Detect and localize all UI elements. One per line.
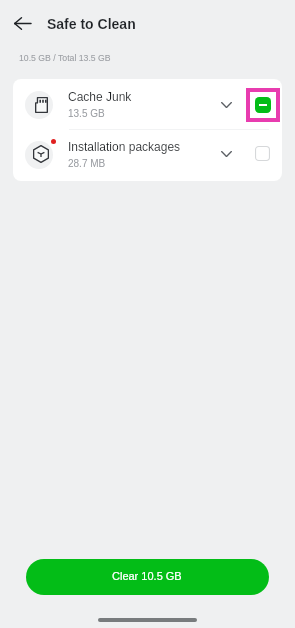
button[interactable]: Select (246, 88, 280, 122)
staticText: 13.5 GB (68, 108, 105, 119)
button[interactable]: Installation packages (13, 130, 282, 181)
staticText: Safe to Clean (47, 16, 136, 32)
button[interactable]: Select (246, 138, 280, 172)
staticText: Installation packages (68, 140, 181, 153)
staticText: 28.7 MB (68, 158, 106, 169)
staticText: 10.5 GB / Total 13.5 GB (19, 53, 111, 63)
button[interactable]: Expand (212, 141, 240, 169)
button[interactable]: Expand (212, 92, 240, 120)
staticText: Clear 10.5 GB (112, 570, 182, 582)
button[interactable]: Cache Junk (13, 79, 282, 129)
button[interactable]: Back (7, 8, 37, 38)
staticText: Cache Junk (68, 90, 132, 103)
button[interactable]: Clear 10.5 GB (26, 559, 269, 595)
